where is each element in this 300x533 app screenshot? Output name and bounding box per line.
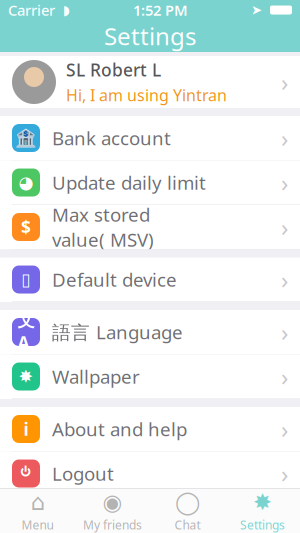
staticText: Update daily limit [52, 170, 206, 195]
staticText: › [281, 167, 288, 198]
staticText: ⏻ [20, 463, 31, 484]
staticText: ◉ [102, 489, 122, 515]
staticText: Menu [21, 517, 53, 533]
button[interactable]: 🏦 [0, 116, 300, 160]
staticText: › [281, 458, 288, 489]
button[interactable]: 文A [0, 310, 300, 354]
staticText: 🏦 [15, 128, 37, 148]
staticText: Logout [52, 461, 114, 486]
staticText: › [281, 264, 288, 295]
staticText: 語言 Language [52, 320, 183, 344]
staticText: › [281, 361, 288, 392]
button[interactable]: My friends [75, 489, 150, 533]
button[interactable]: ✸ [0, 354, 300, 399]
button[interactable]: ▯ [0, 257, 300, 302]
staticText: ✸ [18, 367, 33, 386]
staticText: ⌂ [30, 489, 44, 515]
staticText: Settings [104, 20, 196, 52]
staticText: › [281, 122, 288, 154]
staticText: i [23, 417, 28, 440]
staticText: About and help [52, 417, 187, 441]
staticText: › [281, 413, 288, 445]
button[interactable]: Menu [0, 489, 75, 533]
staticText: My friends [83, 517, 142, 533]
button[interactable]: SL Robert L [0, 56, 300, 108]
staticText: 文A [17, 310, 34, 354]
button[interactable]: $ [0, 205, 300, 249]
button[interactable]: Settings [225, 489, 300, 533]
staticText: › [281, 66, 288, 98]
button[interactable]: Chat [150, 489, 225, 533]
staticText: ➤ [251, 2, 262, 17]
staticText: › [281, 211, 288, 243]
button[interactable]: ⏻ [0, 451, 300, 496]
staticText: Chat [174, 517, 200, 533]
staticText: Bank account [52, 126, 171, 150]
staticText: Hi, I am using Yintran [66, 84, 227, 106]
button[interactable]: i [0, 407, 300, 451]
staticText: 1:52 PM [133, 0, 188, 20]
staticText: › [281, 316, 288, 348]
staticText: Carrier [8, 0, 55, 20]
staticText: ◕ [18, 173, 33, 192]
staticText: Settings [240, 517, 285, 533]
staticText: ▯ [21, 270, 31, 289]
staticText: ◯ [175, 489, 200, 515]
staticText: SL Robert L [66, 58, 161, 81]
button[interactable]: ◕ [0, 160, 300, 205]
staticText: Max stored value( MSV) [52, 202, 154, 252]
staticText: ◗ [63, 2, 70, 17]
staticText: Wallpaper [52, 364, 140, 389]
staticText: $ [21, 215, 31, 238]
staticText: Default device [52, 267, 177, 292]
staticText: ✸ [253, 489, 272, 515]
